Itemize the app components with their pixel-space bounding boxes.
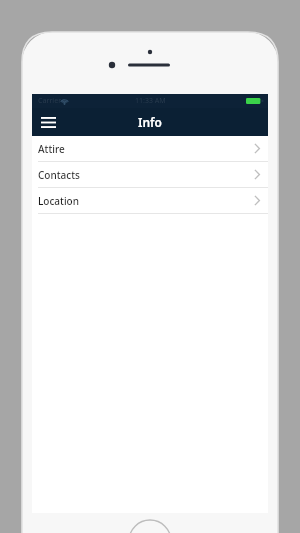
button[interactable]: Menu xyxy=(36,110,60,134)
staticText: 11:33 AM xyxy=(135,96,166,106)
staticText: Contacts xyxy=(38,168,80,182)
staticText: Attire xyxy=(38,142,65,156)
staticText: Info xyxy=(138,114,162,130)
button[interactable]: Attire xyxy=(32,136,268,161)
staticText: Carrier xyxy=(38,96,62,106)
staticText: Location xyxy=(38,194,79,208)
button[interactable]: Location xyxy=(32,188,268,213)
button[interactable]: Contacts xyxy=(32,162,268,187)
